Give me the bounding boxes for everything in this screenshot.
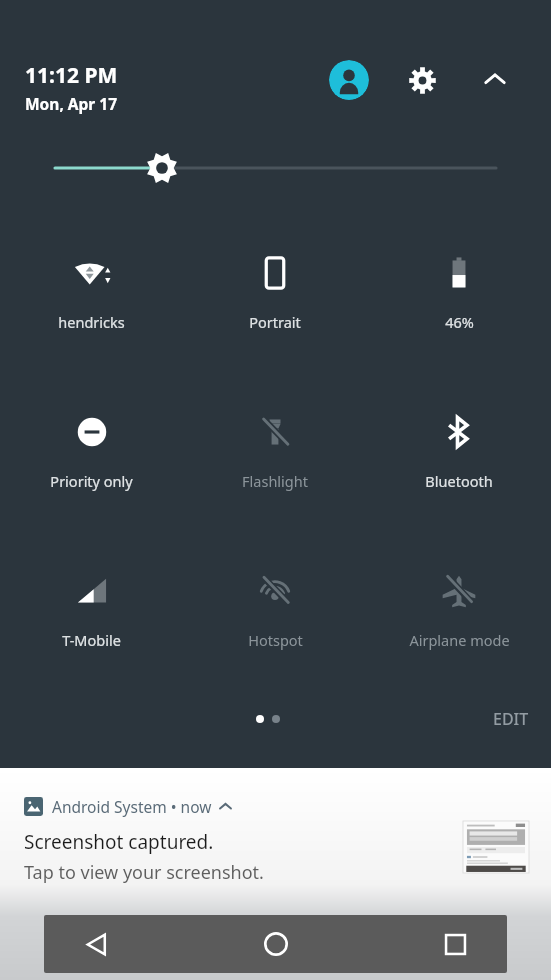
staticText: Airplane mode bbox=[409, 630, 510, 650]
button[interactable]: Recent apps bbox=[429, 918, 481, 970]
button[interactable]: Hotspot bbox=[183, 554, 367, 662]
button[interactable]: Android System • now bbox=[0, 768, 551, 908]
button[interactable]: Settings bbox=[402, 60, 442, 100]
staticText: hendricks bbox=[58, 312, 125, 332]
staticText: Hotspot bbox=[248, 630, 303, 650]
staticText: Tap to view your screenshot. bbox=[24, 860, 264, 885]
button[interactable]: T-Mobile bbox=[0, 554, 183, 662]
button[interactable]: Airplane mode bbox=[367, 554, 551, 662]
button[interactable]: Bluetooth bbox=[367, 395, 551, 503]
button[interactable]: Brightness bbox=[0, 142, 551, 194]
staticText: Flashlight bbox=[242, 471, 308, 491]
staticText: Portrait bbox=[249, 312, 301, 332]
button[interactable]: Collapse bbox=[475, 60, 515, 100]
button[interactable]: Flashlight bbox=[183, 395, 367, 503]
button[interactable]: Portrait bbox=[183, 236, 367, 344]
staticText: Screenshot captured. bbox=[24, 829, 214, 855]
button[interactable]: Home bbox=[250, 918, 302, 970]
staticText: 11:12 PM bbox=[25, 61, 118, 90]
button[interactable]: User account bbox=[329, 60, 369, 100]
staticText: EDIT bbox=[493, 708, 529, 730]
button[interactable]: Priority only bbox=[0, 395, 183, 503]
button[interactable]: 46% bbox=[367, 236, 551, 344]
button[interactable]: hendricks bbox=[0, 236, 183, 344]
button[interactable]: Back bbox=[70, 918, 122, 970]
staticText: T-Mobile bbox=[62, 630, 121, 650]
staticText: Mon, Apr 17 bbox=[25, 93, 118, 114]
staticText: Priority only bbox=[50, 471, 133, 491]
staticText: Android System • now bbox=[52, 796, 212, 817]
staticText: Bluetooth bbox=[425, 471, 493, 491]
button[interactable]: EDIT bbox=[493, 708, 529, 730]
staticText: 46% bbox=[445, 312, 474, 332]
